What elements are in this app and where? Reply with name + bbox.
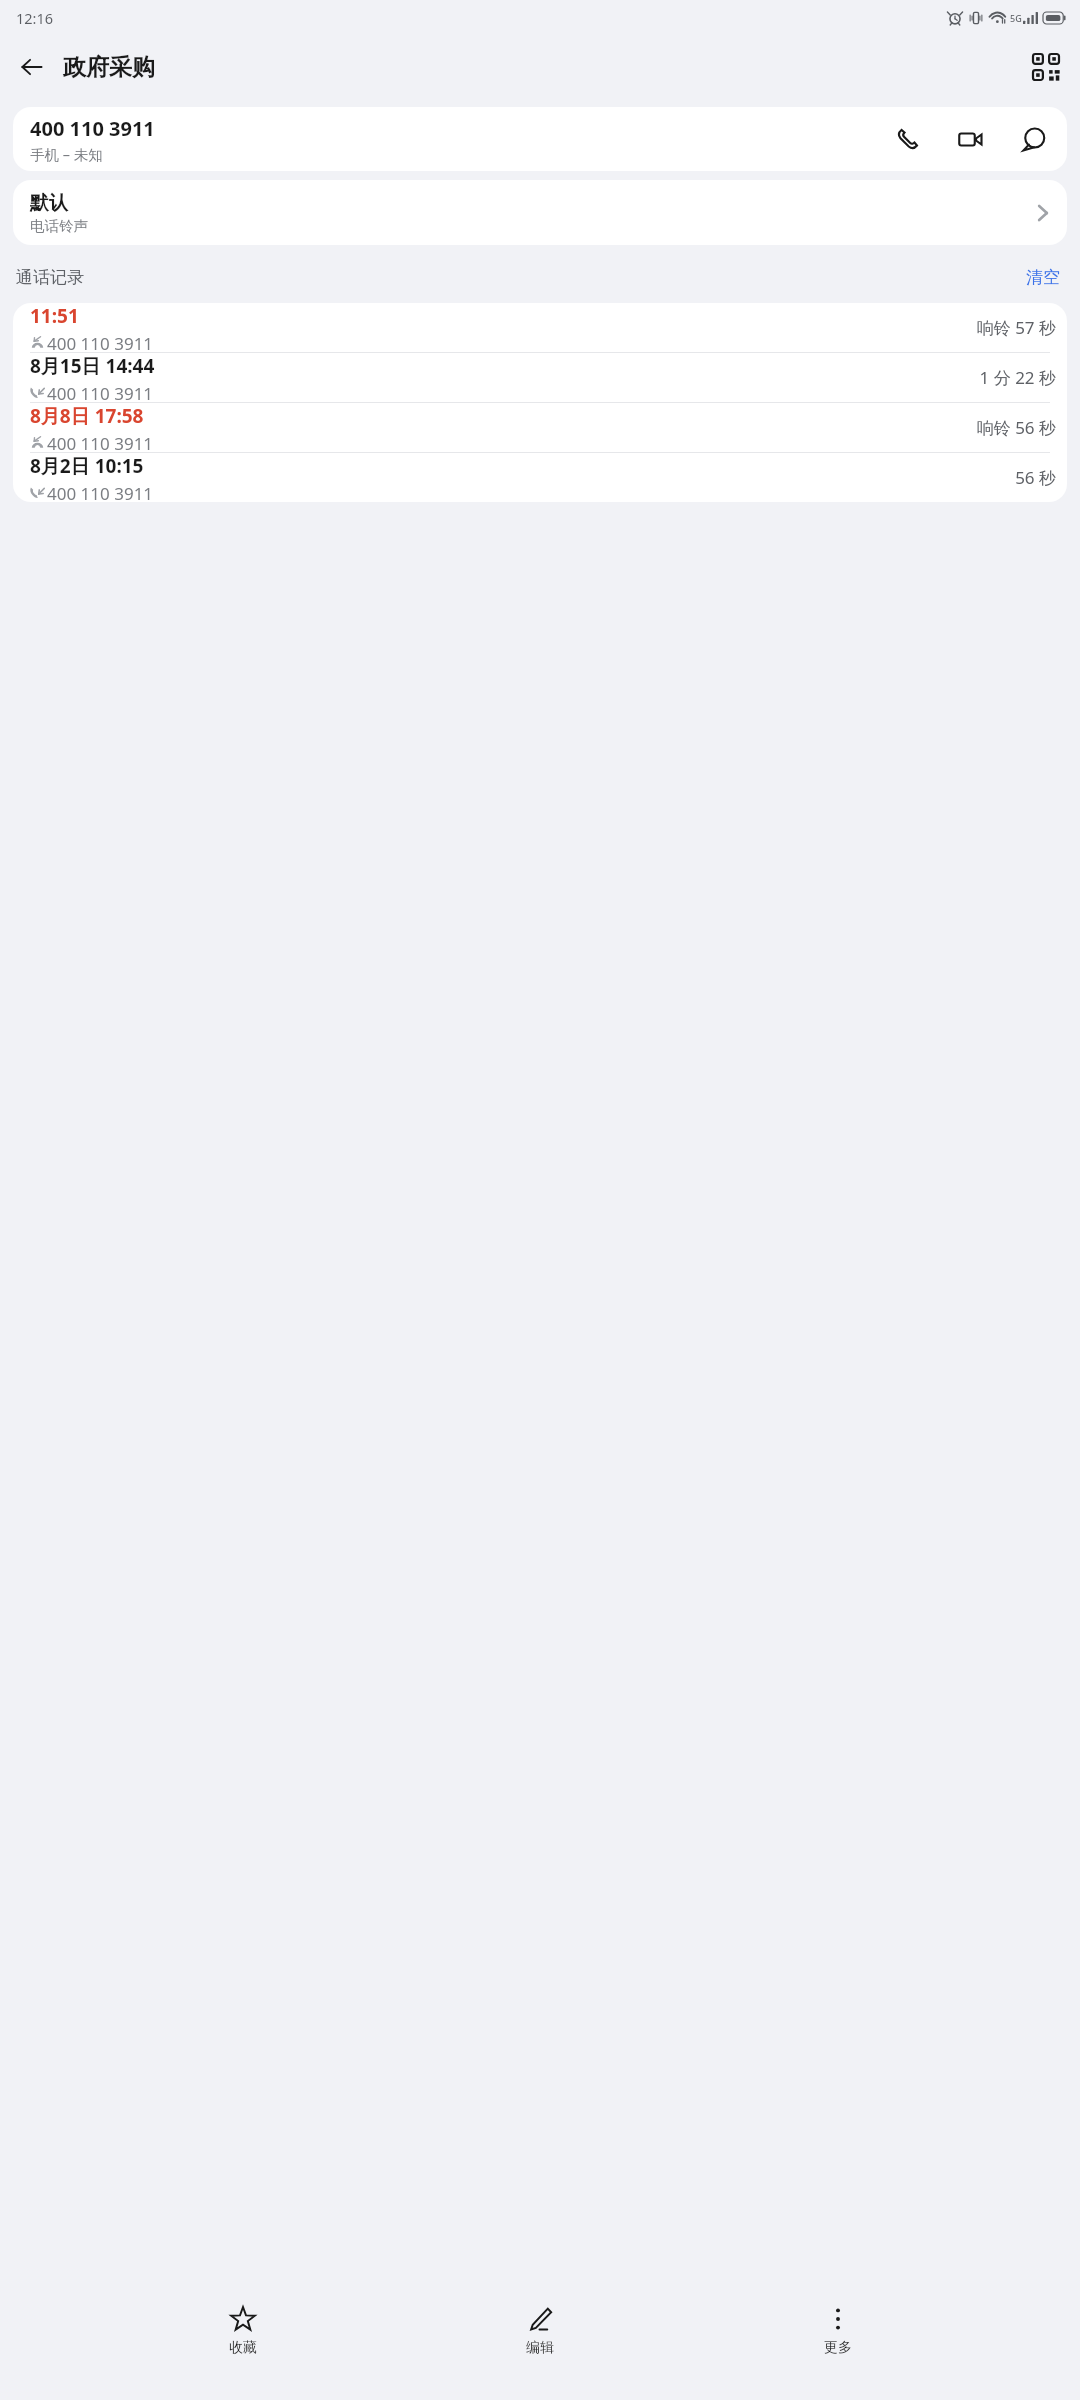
button[interactable]: 8月2日 10:15 (13, 453, 1067, 502)
staticText: 12:16 (16, 8, 54, 28)
button[interactable]: Back (8, 43, 56, 91)
staticText: 400 110 3911 (30, 115, 155, 142)
button[interactable]: 清空 (1022, 265, 1064, 290)
staticText: 清空 (1026, 267, 1060, 288)
staticText: 响铃 57 秒 (976, 316, 1056, 339)
staticText: 默认 (30, 191, 68, 215)
staticText: 响铃 56 秒 (976, 416, 1056, 439)
staticText: 更多 (824, 2339, 852, 2357)
button[interactable]: Scan QR code (1022, 43, 1070, 91)
button[interactable]: Call (887, 119, 927, 159)
button[interactable]: 编辑 (485, 2292, 595, 2365)
staticText: 8月2日 10:15 (30, 453, 144, 479)
staticText: 8月8日 17:58 (30, 403, 144, 429)
staticText: 400 110 3911 (47, 382, 154, 402)
staticText: 手机 – 未知 (30, 144, 103, 164)
button[interactable]: Video call (950, 119, 990, 159)
button[interactable]: 默认 (13, 180, 1067, 245)
button[interactable]: 收藏 (188, 2292, 298, 2365)
button[interactable]: Message (1013, 119, 1053, 159)
button[interactable]: 8月8日 17:58 (13, 403, 1067, 452)
button[interactable]: 400 110 3911 (13, 107, 1067, 171)
staticText: 11:51 (30, 303, 79, 329)
staticText: 400 110 3911 (47, 332, 154, 352)
staticText: 通话记录 (16, 267, 84, 288)
staticText: 56 秒 (1015, 466, 1056, 489)
staticText: 政府采购 (63, 53, 155, 82)
staticText: 编辑 (526, 2339, 554, 2357)
staticText: 5G (1010, 12, 1022, 24)
staticText: 电话铃声 (30, 217, 88, 235)
button[interactable]: 11:51 (13, 303, 1067, 352)
staticText: 8月15日 14:44 (30, 353, 155, 379)
staticText: 400 110 3911 (47, 432, 154, 452)
button[interactable]: 更多 (783, 2292, 893, 2365)
staticText: 1 分 22 秒 (979, 366, 1056, 389)
staticText: 400 110 3911 (47, 482, 154, 502)
button[interactable]: 8月15日 14:44 (13, 353, 1067, 402)
staticText: 收藏 (229, 2339, 257, 2357)
